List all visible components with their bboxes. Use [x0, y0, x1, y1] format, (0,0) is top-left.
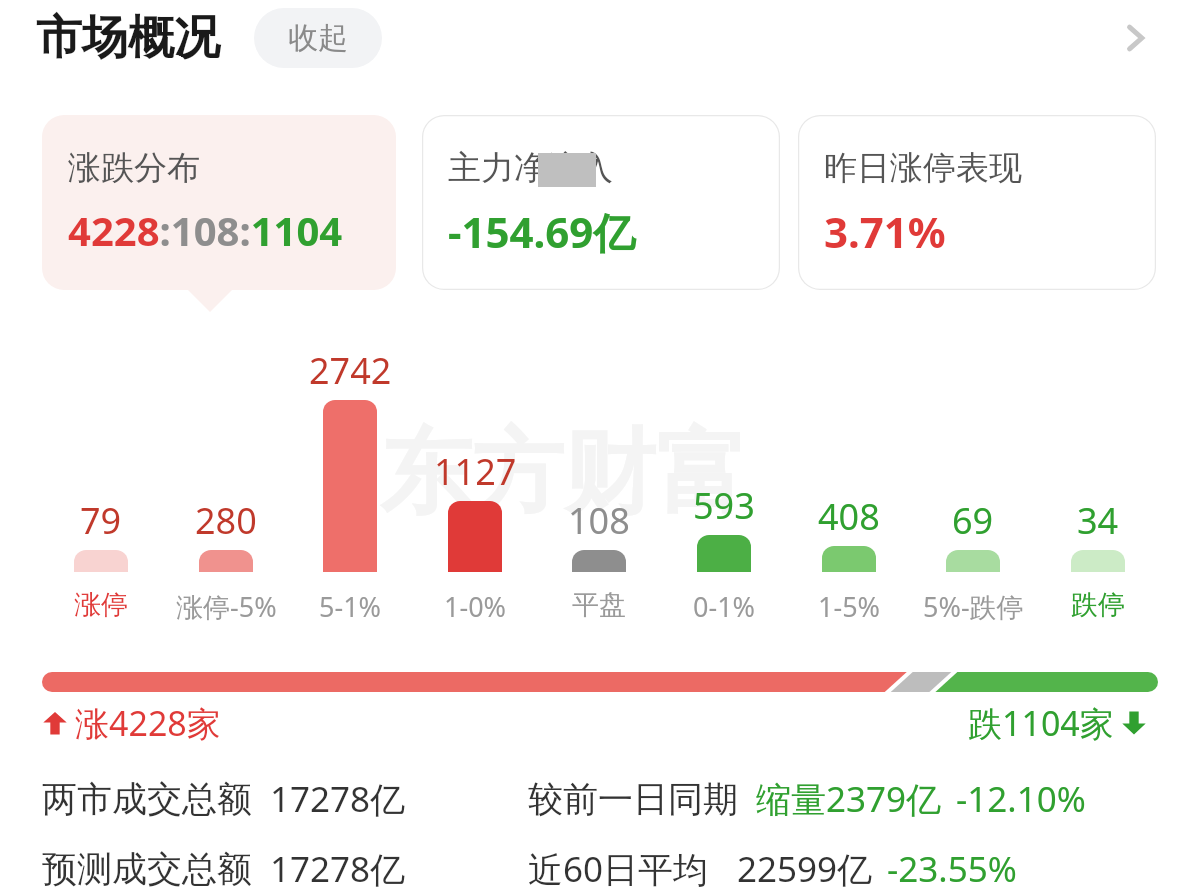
staticText: 5%-跌停: [923, 588, 1024, 625]
staticText: 69: [952, 496, 994, 545]
staticText: -23.55%: [887, 845, 1017, 890]
staticText: 17278亿: [270, 775, 406, 823]
staticText: 593: [693, 481, 755, 530]
staticText: 22599亿: [737, 845, 873, 890]
button[interactable]: 收起: [254, 8, 382, 68]
staticText: 280: [195, 496, 257, 545]
staticText: -154.69亿: [448, 203, 636, 260]
staticText: 3.71%: [824, 203, 946, 260]
staticText: 5-1%: [319, 588, 382, 625]
staticText: 东方财富: [380, 415, 748, 531]
staticText: 涨停-5%: [176, 588, 277, 625]
staticText: 17278亿: [270, 845, 406, 890]
staticText: 涨停: [74, 588, 128, 622]
staticText: 预测成交总额: [42, 847, 252, 890]
staticText: 涨跌分布: [68, 147, 200, 189]
staticText: 平盘: [572, 588, 626, 622]
staticText: 涨4228家: [75, 700, 221, 746]
staticText: 近60日平均: [528, 845, 709, 890]
staticText: 较前一日同期: [528, 777, 738, 821]
staticText: 跌停: [1071, 588, 1125, 622]
staticText: 79: [80, 496, 122, 545]
staticText: 跌1104家: [968, 700, 1114, 746]
staticText: 昨日涨停表现: [824, 147, 1022, 189]
staticText: 0-1%: [693, 588, 756, 625]
button[interactable]: 昨日涨停表现: [798, 115, 1156, 290]
staticText: 108: [568, 496, 630, 545]
staticText: 34: [1077, 496, 1119, 545]
button[interactable]: 涨跌分布: [42, 115, 396, 290]
staticText: 1-0%: [444, 588, 507, 625]
staticText: -12.10%: [956, 775, 1086, 823]
staticText: 两市成交总额: [42, 777, 252, 821]
staticText: 1-5%: [818, 588, 881, 625]
staticText: 主力净流入: [448, 147, 613, 189]
staticText: 市场概况: [36, 9, 220, 67]
staticText: 缩量2379亿: [756, 775, 942, 823]
staticText: 1127: [434, 447, 517, 496]
staticText: 4228:108:1104: [68, 203, 343, 257]
button[interactable]: More: [1106, 9, 1164, 67]
staticText: 408: [818, 492, 880, 541]
button[interactable]: 主力净流入: [422, 115, 780, 290]
staticText: 2742: [309, 346, 392, 395]
staticText: 收起: [288, 19, 348, 57]
